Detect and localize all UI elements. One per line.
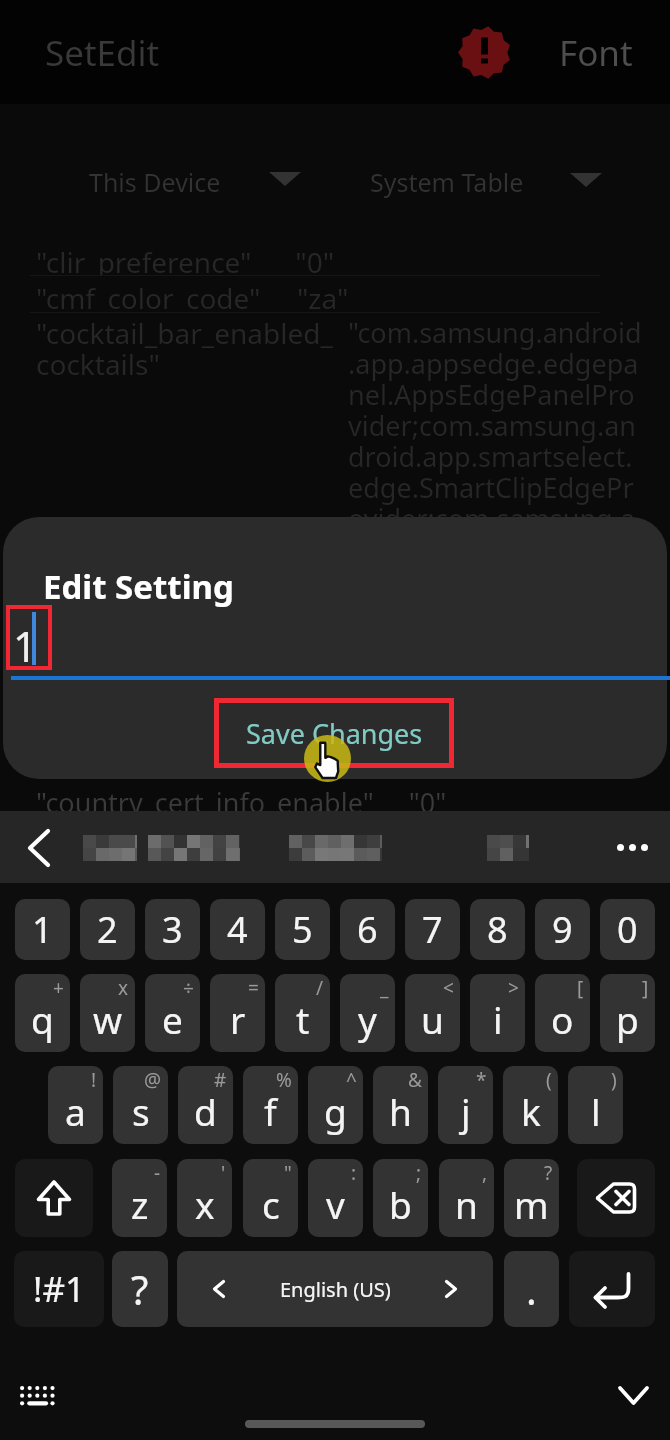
staticText: 1 (13, 617, 38, 674)
button[interactable]: : (308, 1159, 363, 1237)
button[interactable]: More options (606, 833, 654, 861)
staticText: n (455, 1179, 478, 1229)
button[interactable]: Hide keyboard (618, 1386, 649, 1405)
button[interactable]: 1 (6, 606, 52, 670)
button[interactable]: & (373, 1066, 428, 1144)
staticText: l (591, 1086, 601, 1136)
staticText: Edit Setting (43, 564, 234, 609)
staticText: 2 (97, 905, 118, 954)
button[interactable]: * (438, 1066, 493, 1144)
staticText: "country_cert_info_enable" "0" (36, 784, 447, 821)
staticText: , (482, 1160, 488, 1186)
staticText: SetEdit (45, 29, 160, 77)
staticText: u (421, 994, 444, 1044)
button[interactable]: This Device (89, 165, 221, 199)
button[interactable]: ( (503, 1066, 558, 1144)
button[interactable]: English (US) (177, 1251, 493, 1327)
staticText: "com.samsung.android.app.appsedge.edgepa… (348, 314, 644, 519)
staticText: 8 (487, 905, 508, 954)
button[interactable]: > (470, 974, 525, 1052)
staticText: [ (577, 975, 584, 1001)
staticText: a (65, 1086, 86, 1136)
button[interactable]: Font (559, 29, 633, 77)
button[interactable]: . (504, 1251, 559, 1327)
button[interactable]: Save Changes (214, 698, 454, 768)
staticText: m (514, 1179, 549, 1229)
button[interactable]: / (275, 974, 330, 1052)
button[interactable]: @ (113, 1066, 168, 1144)
button[interactable]: 0 (600, 899, 655, 960)
button[interactable]: ? (504, 1159, 559, 1237)
staticText: > (508, 975, 519, 1001)
button[interactable]: ! (48, 1066, 103, 1144)
staticText: 0 (617, 905, 638, 954)
staticText: 6 (357, 905, 378, 954)
button[interactable]: " (243, 1159, 298, 1237)
button[interactable]: x (80, 974, 135, 1052)
button[interactable]: 8 (470, 899, 525, 960)
button[interactable]: 9 (535, 899, 590, 960)
button[interactable]: = (210, 974, 265, 1052)
button[interactable]: [ (535, 974, 590, 1052)
button[interactable]: 7 (405, 899, 460, 960)
button[interactable]: Backspace (577, 1159, 655, 1237)
button[interactable]: Shift (15, 1159, 93, 1237)
button[interactable]: Back (28, 829, 50, 867)
button[interactable]: + (15, 974, 70, 1052)
staticText: ÷ (183, 975, 194, 1001)
button[interactable]: ; (373, 1159, 428, 1237)
button[interactable]: 2 (80, 899, 135, 960)
button[interactable]: "cmf_color_code" "za" (36, 279, 636, 311)
staticText: 9 (552, 905, 573, 954)
button[interactable]: System Table (370, 165, 524, 199)
staticText: - (154, 1160, 161, 1186)
button[interactable]: 4 (210, 899, 265, 960)
button[interactable]: "country_cert_info_enable" "0" (0, 784, 670, 821)
staticText: h (389, 1086, 412, 1136)
staticText: / (316, 975, 324, 1001)
button[interactable]: ^ (308, 1066, 363, 1144)
button[interactable]: "clir_preference" "0" (36, 243, 636, 275)
staticText: _ (380, 975, 389, 1001)
staticText: w (93, 994, 123, 1044)
staticText: ) (611, 1067, 617, 1093)
button[interactable]: Enter (569, 1251, 655, 1327)
staticText: = (248, 975, 259, 1001)
staticText: f (264, 1086, 277, 1136)
button[interactable]: ÷ (145, 974, 200, 1052)
staticText: j (461, 1086, 471, 1136)
staticText: ( (546, 1067, 552, 1093)
button[interactable]: 6 (340, 899, 395, 960)
staticText: * (476, 1067, 487, 1093)
staticText: ; (416, 1160, 422, 1186)
button[interactable]: 5 (275, 899, 330, 960)
button[interactable]: !#1 (14, 1251, 104, 1327)
button[interactable]: Warning (458, 26, 511, 79)
staticText: s (132, 1086, 150, 1136)
button[interactable]: - (112, 1159, 167, 1237)
button[interactable]: "cocktail_bar_enabled_ cocktails" (0, 314, 670, 519)
button[interactable]: Keyboard layout (20, 1386, 54, 1406)
button[interactable]: 1 (15, 899, 70, 960)
staticText: p (616, 994, 639, 1044)
staticText: " (284, 1160, 292, 1186)
button[interactable]: 3 (145, 899, 200, 960)
button[interactable]: _ (340, 974, 395, 1052)
staticText: % (276, 1067, 292, 1093)
button[interactable]: , (439, 1159, 494, 1237)
button[interactable]: ] (600, 974, 655, 1052)
button[interactable]: Select table (570, 173, 602, 187)
staticText: . (526, 1262, 537, 1316)
button[interactable]: % (243, 1066, 298, 1144)
button[interactable]: Select device (269, 172, 301, 186)
staticText: d (194, 1086, 217, 1136)
staticText: # (214, 1067, 227, 1093)
button[interactable]: # (178, 1066, 233, 1144)
button[interactable]: ) (568, 1066, 623, 1144)
staticText: v (326, 1179, 345, 1229)
button[interactable]: ' (177, 1159, 232, 1237)
button[interactable]: < (405, 974, 460, 1052)
button[interactable]: ? (112, 1251, 168, 1327)
staticText: o (551, 994, 574, 1044)
staticText: t (296, 994, 310, 1044)
